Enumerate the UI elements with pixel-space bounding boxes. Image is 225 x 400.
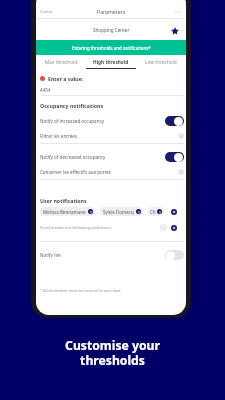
button[interactable]: Melissa Bennamane: [40, 207, 95, 216]
staticText: Send emails the following addresses: [40, 225, 160, 231]
staticText: Notify of increased occupancy: [40, 118, 165, 124]
staticText: Notify me: [40, 252, 165, 258]
button[interactable]: Sylvie Domecq: [100, 207, 143, 216]
button[interactable]: High threshold: [86, 55, 136, 70]
staticText: Customise your thresholds: [0, 337, 225, 369]
button[interactable]: Max threshold: [36, 55, 86, 70]
button[interactable]: Add recipient: [171, 209, 177, 215]
button[interactable]: Filtrer les entrées: [36, 128, 186, 143]
staticText: Filtrer les entrées: [40, 133, 178, 139]
button[interactable]: Notify of decreased occupancy: [36, 149, 186, 164]
staticText: Ch: [150, 209, 156, 215]
staticText: Melissa Bennamane: [43, 209, 86, 215]
staticText: Conserver les effectifs aux portes: [40, 169, 178, 175]
button[interactable]: Conserver les effectifs aux portes: [36, 164, 186, 179]
button[interactable]: Toggle: [165, 116, 184, 126]
button[interactable]: Notify me: [36, 247, 186, 262]
staticText: Shopping Center: [93, 27, 130, 33]
staticText: 4454: [40, 87, 51, 93]
button[interactable]: Shopping Center: [36, 19, 186, 40]
staticText: Entering thresholds and notifications*: [72, 45, 151, 51]
button[interactable]: Clear: [178, 169, 184, 175]
staticText: High threshold: [93, 59, 129, 65]
staticText: User notifications: [40, 197, 87, 204]
button[interactable]: Toggle: [165, 152, 184, 162]
button[interactable]: Add recipient: [171, 225, 177, 231]
staticText: Occupancy notifications: [40, 102, 104, 109]
button[interactable]: Favourite: [171, 27, 179, 35]
staticText: Max threshold: [45, 59, 78, 65]
button[interactable]: Ch: [148, 207, 164, 216]
staticText: Notify of decreased occupancy: [40, 154, 165, 160]
button[interactable]: Toggle: [165, 250, 184, 260]
button[interactable]: Notify of increased occupancy: [36, 113, 186, 128]
button[interactable]: Save: [173, 9, 186, 14]
button[interactable]: Clear: [178, 133, 184, 139]
staticText: Enter a value:: [48, 75, 84, 82]
staticText: Parameters: [97, 8, 126, 15]
button[interactable]: Low threshold: [136, 55, 186, 70]
staticText: * All thresholds must be entered to save…: [40, 288, 122, 293]
staticText: Sylvie Domecq: [103, 209, 134, 215]
button[interactable]: Cancel: [36, 9, 53, 14]
staticText: Low threshold: [145, 59, 177, 65]
